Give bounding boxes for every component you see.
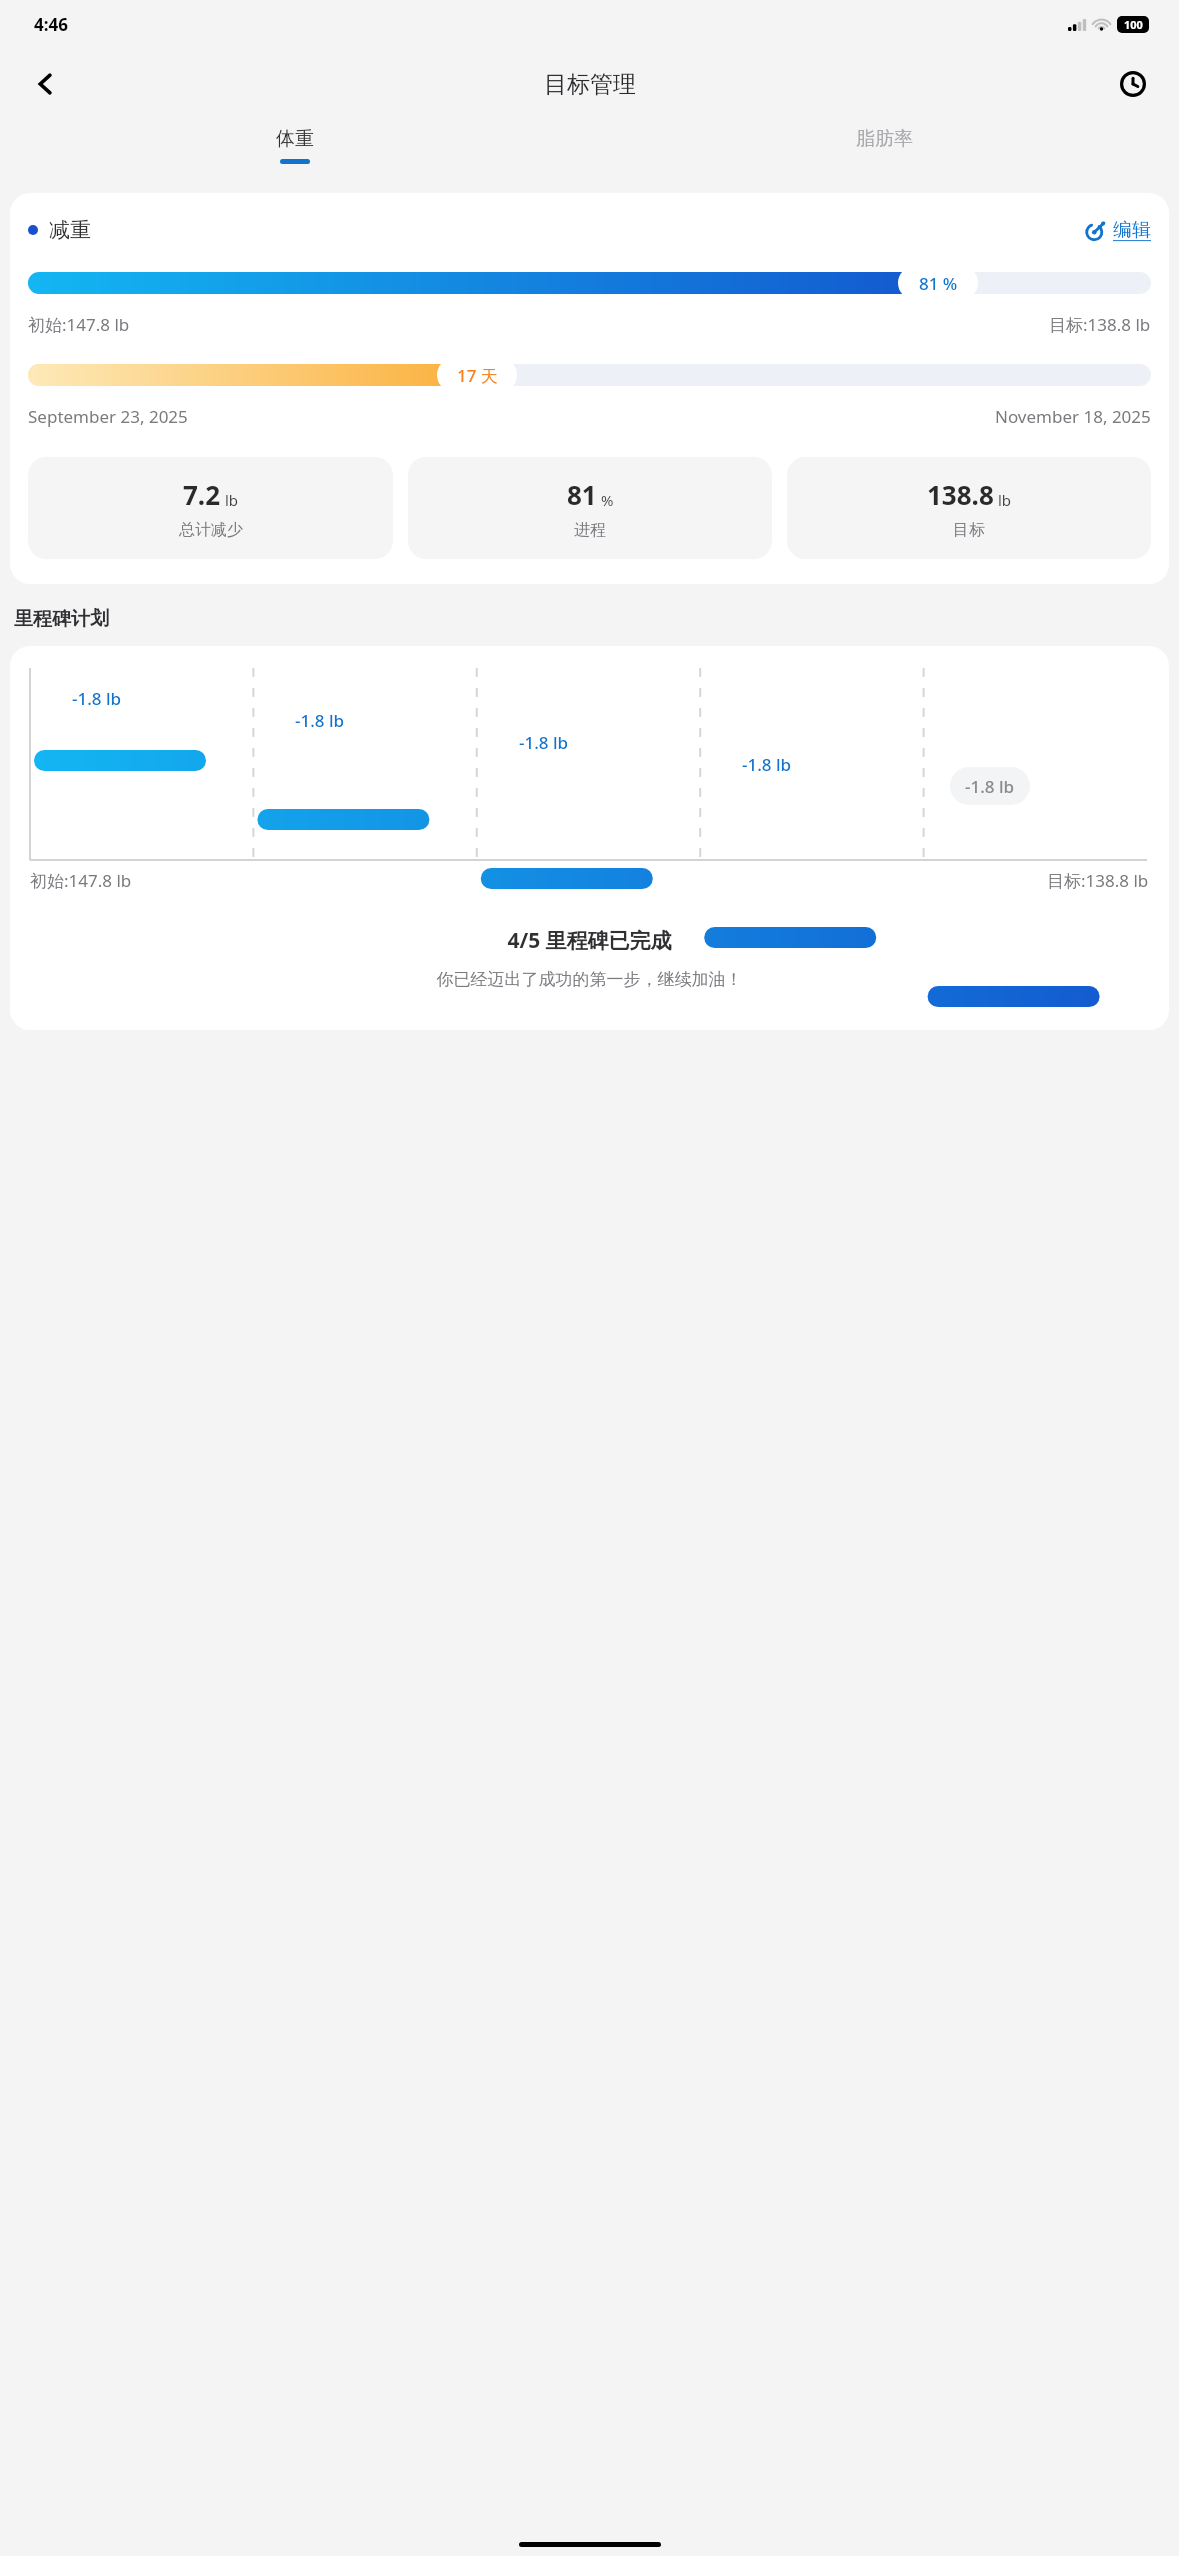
staticText: 脂肪率 xyxy=(856,127,913,151)
staticText: -1.8 lb xyxy=(965,775,1015,798)
staticText: 目标:138.8 lb xyxy=(1049,313,1151,336)
staticText: 里程碑计划 xyxy=(14,607,109,631)
button[interactable]: 体重 xyxy=(0,120,589,180)
staticText: lb xyxy=(998,490,1012,510)
staticText: 体重 xyxy=(276,127,314,151)
staticText: 7.2 xyxy=(183,477,221,512)
staticText: -1.8 lb xyxy=(295,709,345,732)
staticText: % xyxy=(601,490,614,510)
staticText: 总计减少 xyxy=(179,520,243,540)
staticText: September 23, 2025 xyxy=(28,405,188,428)
staticText: 进程 xyxy=(574,520,606,540)
staticText: 81 % xyxy=(919,272,958,295)
staticText: 4:46 xyxy=(34,13,68,36)
staticText: 目标 xyxy=(953,520,985,540)
staticText: 减重 xyxy=(49,217,91,243)
staticText: 初始:147.8 lb xyxy=(30,869,132,892)
staticText: lb xyxy=(225,490,239,510)
staticText: -1.8 lb xyxy=(72,687,122,710)
button[interactable]: 7.2 xyxy=(28,457,393,559)
staticText: 目标管理 xyxy=(544,70,636,99)
button[interactable]: 编辑 xyxy=(1085,218,1151,242)
staticText: 初始:147.8 lb xyxy=(28,313,130,336)
staticText: 81 xyxy=(567,477,597,512)
staticText: 138.8 xyxy=(927,477,994,512)
staticText: 你已经迈出了成功的第一步，继续加油！ xyxy=(10,969,1169,990)
button[interactable]: Back xyxy=(22,60,70,108)
staticText: November 18, 2025 xyxy=(995,405,1151,428)
staticText: -1.8 lb xyxy=(742,753,792,776)
staticText: 4/5 里程碑已完成 xyxy=(10,926,1169,955)
button[interactable]: 脂肪率 xyxy=(589,120,1179,180)
staticText: 目标:138.8 lb xyxy=(1047,869,1149,892)
staticText: 17 天 xyxy=(457,364,498,387)
staticText: -1.8 lb xyxy=(519,731,569,754)
button[interactable]: 138.8 xyxy=(787,457,1151,559)
staticText: 编辑 xyxy=(1113,218,1151,242)
staticText: 100 xyxy=(1124,17,1143,32)
button[interactable]: 81 xyxy=(408,457,772,559)
button[interactable]: History xyxy=(1109,60,1157,108)
